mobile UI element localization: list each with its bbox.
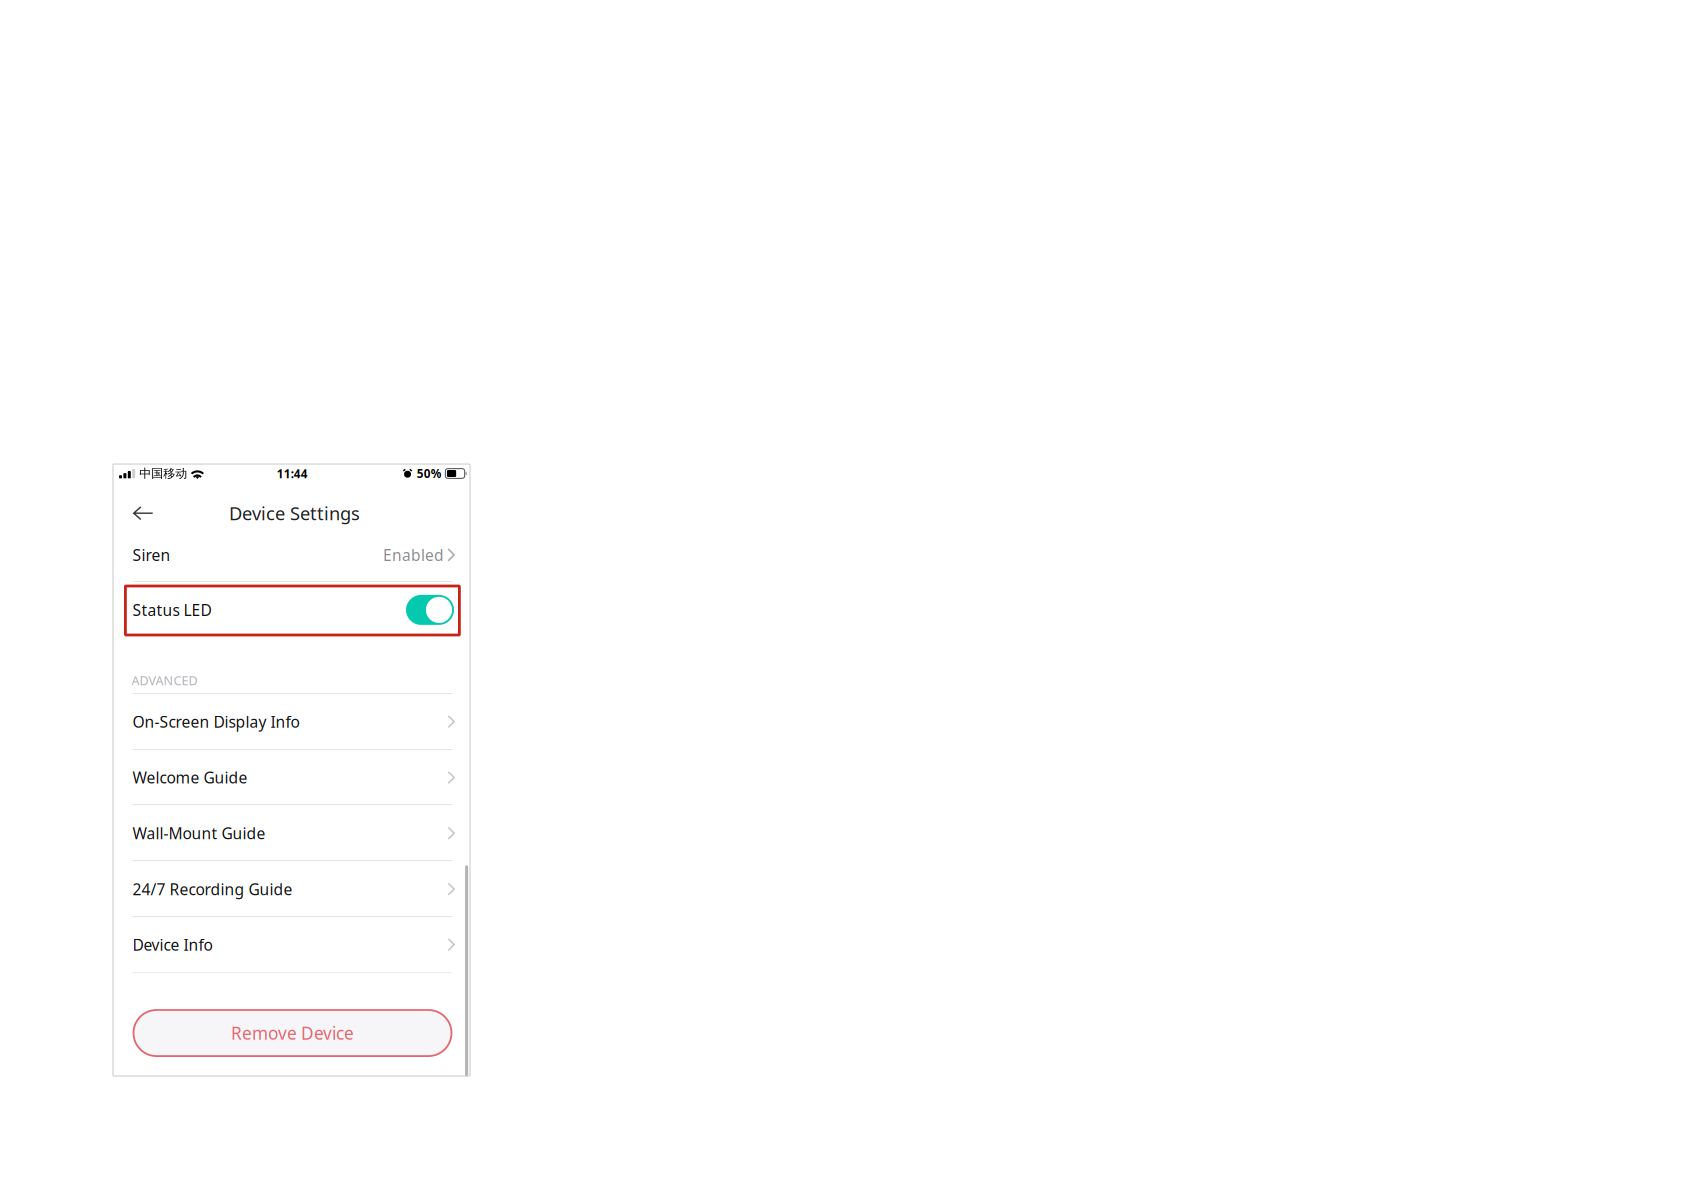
button[interactable]: 24/7 Recording Guide: [113, 862, 470, 917]
button[interactable]: Siren: [113, 531, 470, 578]
button[interactable]: Wall-Mount Guide: [113, 806, 470, 861]
button[interactable]: Back: [122, 495, 163, 531]
staticText: On-Screen Display Info: [132, 711, 299, 732]
staticText: 11:44: [277, 466, 308, 482]
button[interactable]: Remove Device: [133, 1010, 451, 1056]
staticText: 50%: [417, 465, 442, 481]
staticText: 24/7 Recording Guide: [132, 878, 292, 900]
staticText: 中国移动: [139, 466, 187, 481]
button[interactable]: Welcome Guide: [113, 750, 470, 805]
button[interactable]: Device Info: [113, 917, 470, 972]
staticText: Enabled: [383, 544, 444, 565]
staticText: Wall-Mount Guide: [132, 823, 265, 844]
staticText: Remove Device: [231, 1021, 354, 1045]
button[interactable]: Status LED: [113, 586, 470, 634]
staticText: Welcome Guide: [132, 767, 247, 788]
staticText: Device Settings: [229, 501, 360, 526]
staticText: Status LED: [132, 599, 211, 620]
staticText: ADVANCED: [131, 672, 197, 689]
button[interactable]: On-Screen Display Info: [113, 694, 470, 749]
staticText: Device Info: [132, 934, 212, 955]
staticText: Siren: [132, 544, 170, 565]
